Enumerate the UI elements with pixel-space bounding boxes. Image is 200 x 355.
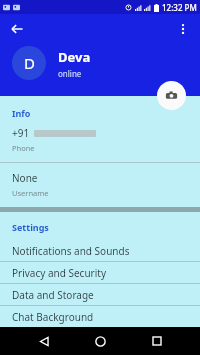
staticText: Data and Storage (12, 288, 94, 302)
staticText: Info (12, 107, 31, 119)
button[interactable]: +91 (0, 126, 200, 153)
button[interactable]: Home (87, 328, 113, 354)
staticText: 12:32 PM (162, 2, 197, 13)
staticText: None (12, 171, 38, 185)
staticText: D (24, 53, 35, 73)
button[interactable]: Recents (144, 328, 170, 354)
staticText: Settings (12, 221, 49, 233)
button[interactable]: Back (31, 328, 57, 354)
button[interactable]: Back (5, 17, 29, 41)
staticText: Notifications and Sounds (12, 244, 130, 258)
button[interactable]: Data and Storage (0, 284, 200, 305)
staticText: +91 (12, 126, 30, 140)
button[interactable]: D (12, 46, 46, 80)
staticText: online (58, 68, 82, 79)
button[interactable]: Notifications and Sounds (0, 240, 200, 261)
staticText: Deva (58, 48, 91, 66)
button[interactable]: More options (171, 17, 195, 41)
button[interactable]: None (0, 163, 200, 207)
button[interactable]: Chat Background (0, 306, 200, 327)
staticText: Privacy and Security (12, 266, 107, 280)
button[interactable]: Privacy and Security (0, 262, 200, 283)
staticText: Phone (12, 143, 35, 153)
staticText: Username (12, 188, 49, 198)
button[interactable]: Change photo (157, 81, 186, 110)
staticText: Chat Background (12, 310, 94, 324)
